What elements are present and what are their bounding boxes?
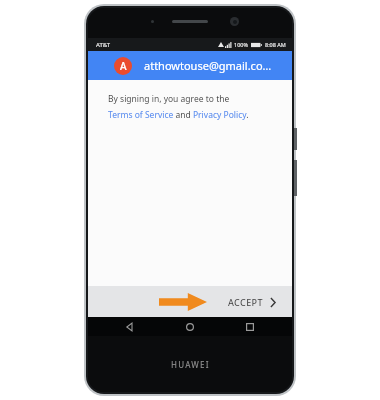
staticText: ACCEPT bbox=[228, 296, 263, 308]
staticText: atthowtouse@gmail.co… bbox=[144, 58, 272, 73]
staticText: Terms of Service and Privacy Policy. bbox=[108, 109, 249, 121]
staticText: By signing in, you agree to the bbox=[108, 93, 230, 105]
button[interactable]: Home bbox=[160, 317, 220, 336]
staticText: AT&T bbox=[96, 41, 110, 49]
button[interactable]: Recent apps bbox=[220, 317, 280, 336]
button[interactable]: ACCEPT bbox=[224, 292, 280, 312]
staticText: 100% bbox=[234, 41, 249, 48]
staticText: 8:08 AM bbox=[265, 41, 286, 48]
staticText: HUAWEI bbox=[171, 359, 210, 370]
button[interactable]: Back bbox=[100, 317, 160, 336]
button[interactable]: A bbox=[88, 51, 292, 80]
staticText: A bbox=[120, 59, 127, 73]
other: Accept highlight arrow bbox=[159, 293, 207, 311]
